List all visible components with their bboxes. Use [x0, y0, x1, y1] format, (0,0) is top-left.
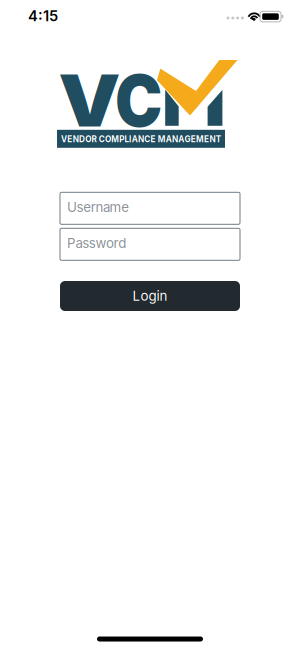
button[interactable]: Username [60, 192, 240, 224]
staticText: C [112, 58, 166, 143]
staticText: Password [67, 235, 126, 251]
staticText: Login [132, 288, 167, 304]
staticText: Username [67, 199, 129, 215]
staticText: V [61, 58, 118, 143]
button[interactable]: Password [60, 228, 240, 260]
staticText: VENDOR COMPLIANCE MANAGEMENT [50, 133, 232, 144]
staticText: 4:15 [28, 7, 58, 25]
button[interactable]: Login [60, 281, 240, 311]
